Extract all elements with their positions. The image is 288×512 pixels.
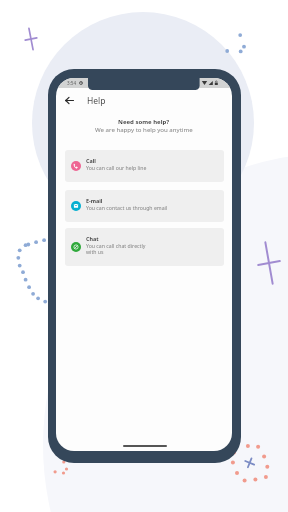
button[interactable]: Back bbox=[63, 94, 76, 107]
staticText: Chat bbox=[86, 235, 99, 242]
staticText: We are happy to help you anytime bbox=[95, 125, 193, 133]
button[interactable]: Call bbox=[65, 150, 224, 182]
staticText: Need some help? bbox=[118, 118, 170, 126]
staticText: You can call chat directly with us bbox=[86, 242, 146, 256]
staticText: You can call our help line bbox=[86, 164, 147, 171]
staticText: 3:54 bbox=[67, 80, 77, 86]
staticText: Help bbox=[87, 95, 106, 107]
staticText: You can contact us through email bbox=[86, 204, 168, 211]
staticText: Call bbox=[86, 157, 96, 164]
staticText: E-mail bbox=[86, 197, 103, 204]
button[interactable]: E-mail bbox=[65, 190, 224, 222]
button[interactable]: Chat bbox=[65, 228, 224, 266]
